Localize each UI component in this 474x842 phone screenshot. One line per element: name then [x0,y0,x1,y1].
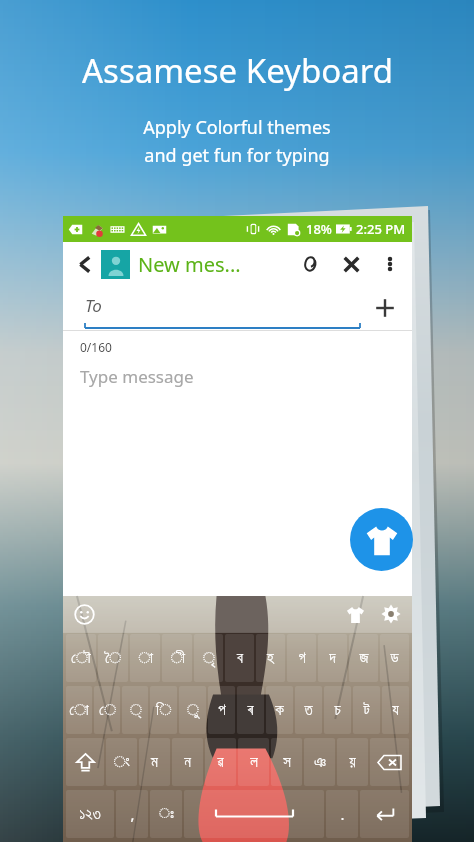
staticText: গ [298,651,306,666]
button[interactable]: ড [380,634,409,682]
button[interactable]: স [271,738,302,786]
button[interactable]: ্ [122,686,148,734]
button[interactable]: ৃ [194,634,223,682]
staticText: ে [99,703,116,718]
staticText: ৰ [247,703,254,718]
staticText: ো [69,703,89,718]
staticText: দ [329,651,336,666]
button[interactable] [66,738,104,786]
button[interactable]: ে [94,686,120,734]
button[interactable]: ৈ [98,634,128,682]
staticText: ঞ [314,755,326,770]
staticText: New mes... [138,251,241,278]
staticText: চ [334,703,341,718]
staticText: To [85,294,102,317]
button[interactable]: . [326,790,358,838]
button[interactable]: জ [349,634,378,682]
staticText: ১২৩ [79,807,101,822]
button[interactable]: Back [71,250,99,278]
staticText: স [283,755,291,770]
staticText: ক [275,703,284,718]
button[interactable]: ট [353,686,380,734]
staticText: Apply Colorful themes [143,115,331,140]
button[interactable]: ব [225,634,254,682]
staticText: া [138,651,153,666]
staticText: ্ [129,703,142,718]
button[interactable] [370,738,409,786]
staticText: ৃ [202,651,215,666]
button[interactable]: Theme [342,601,368,627]
staticText: Type message [80,365,194,388]
button[interactable]: More options [376,250,404,278]
button[interactable] [360,790,409,838]
staticText: ৌ [71,651,91,666]
button[interactable]: ত [295,686,322,734]
button[interactable]: য [382,686,409,734]
staticText: য় [349,755,356,770]
button[interactable]: Emoji [71,601,97,627]
button[interactable]: দ [318,634,347,682]
button[interactable]: া [130,634,160,682]
button[interactable]: ন [172,738,203,786]
button[interactable]: Add recipient [370,293,400,323]
staticText: ৈ [105,651,121,666]
staticText: 0/160 [80,339,112,355]
staticText: ি [156,703,171,718]
staticText: 18% [306,220,332,238]
staticText: ট [363,703,370,718]
button[interactable]: চ [324,686,351,734]
button[interactable]: ি [150,686,177,734]
staticText: ল [250,755,258,770]
button[interactable]: ম [139,738,170,786]
button[interactable]: ু [179,686,206,734]
staticText: ত [304,703,313,718]
staticText: Assamese Keyboard [82,48,393,93]
button[interactable]: ক [266,686,293,734]
button[interactable]: য় [337,738,368,786]
button[interactable]: Attach [294,249,324,279]
staticText: and get fun for typing [144,143,330,168]
button[interactable]: ো [66,686,92,734]
staticText: , [130,804,135,824]
staticText: হ [267,651,274,666]
staticText: ী [170,651,185,666]
button[interactable]: To [85,286,360,330]
staticText: 2:25 PM [356,220,406,238]
staticText: ব [237,651,243,666]
staticText: ৱ [217,755,224,770]
staticText: . [340,804,345,824]
staticText: ু [186,703,199,718]
button[interactable]: ৌ [66,634,96,682]
staticText: ঃ [159,807,174,821]
button[interactable]: প [208,686,235,734]
button[interactable]: Settings [378,601,404,627]
button[interactable] [184,790,324,838]
staticText: প [218,703,226,718]
button[interactable]: ৱ [205,738,236,786]
staticText: ন [184,755,191,770]
button[interactable]: Close [336,249,366,279]
button[interactable]: ং [106,738,137,786]
button[interactable]: ী [162,634,192,682]
button[interactable]: Change theme [350,508,413,571]
staticText: য [392,703,399,718]
staticText: ম [151,755,158,770]
button[interactable]: ঃ [150,790,182,838]
staticText: ং [113,755,130,770]
staticText: ড [390,651,399,666]
button[interactable]: ঞ [304,738,335,786]
button[interactable]: ৰ [237,686,264,734]
button[interactable]: ল [238,738,269,786]
button[interactable]: ১২৩ [66,790,114,838]
button[interactable]: গ [287,634,316,682]
staticText: জ [359,651,369,666]
button[interactable]: , [116,790,148,838]
button[interactable]: হ [256,634,285,682]
